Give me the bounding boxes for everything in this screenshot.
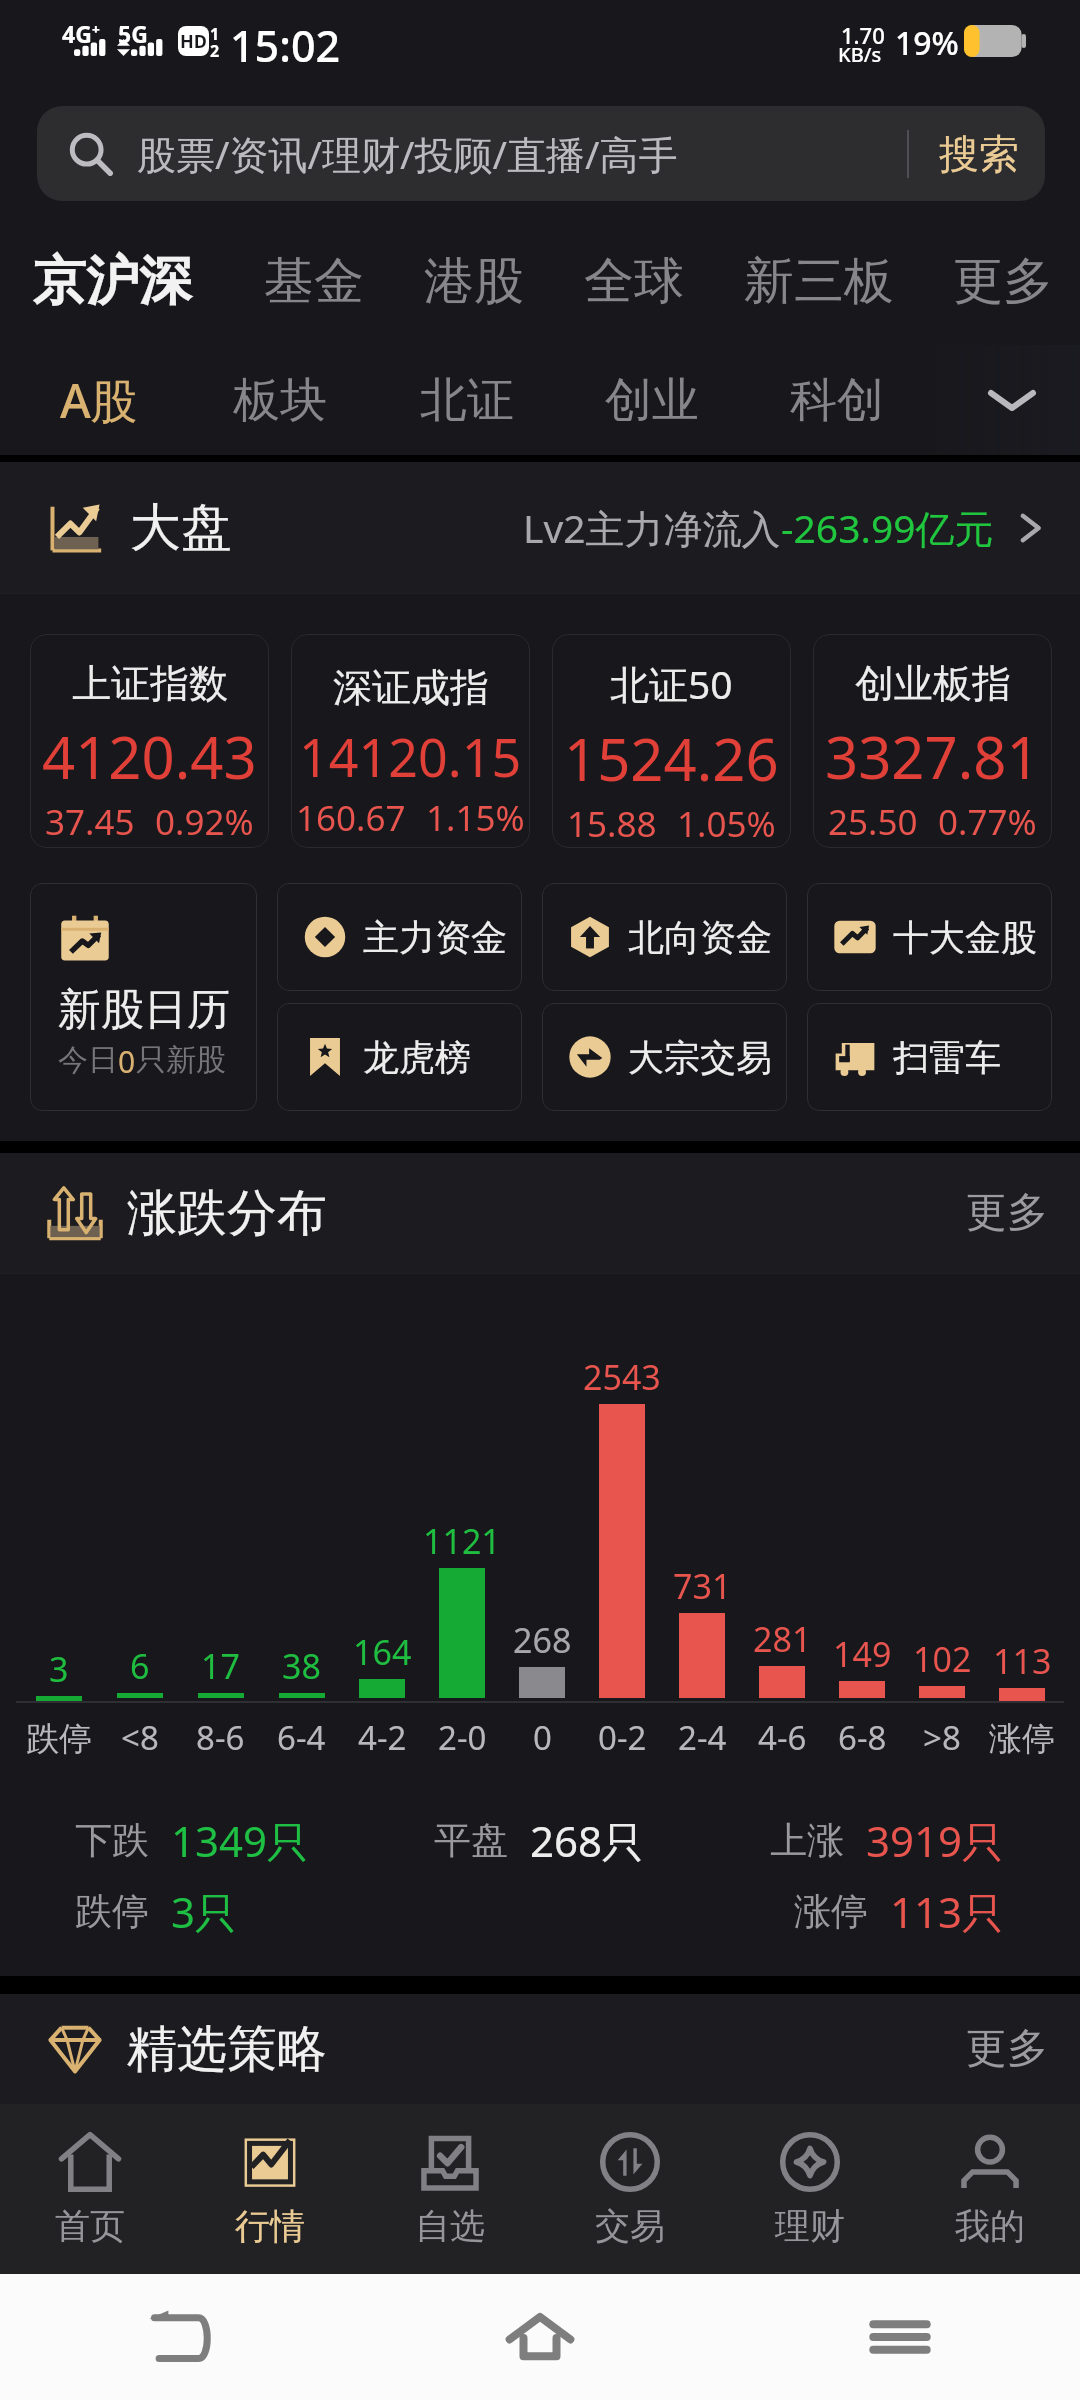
button[interactable]: 股票/资讯/理财/投顾/直播/高手 xyxy=(37,106,1045,201)
button[interactable]: 首页 xyxy=(0,2104,180,2274)
staticText: 北证 xyxy=(420,371,514,430)
staticText: 全球 xyxy=(584,250,684,313)
staticText: 自选 xyxy=(415,2204,485,2248)
button[interactable]: 全球 xyxy=(572,232,696,331)
staticText: 北向资金 xyxy=(628,915,772,960)
staticText: 新股日历 xyxy=(58,983,230,1037)
staticText: 164 xyxy=(353,1629,412,1675)
staticText: 上证指数 xyxy=(72,659,228,708)
staticText: 涨停 xyxy=(794,1888,868,1935)
staticText: 涨跌分布 xyxy=(127,1182,327,1245)
staticText: 0.92% xyxy=(155,798,254,846)
staticText: KB/s xyxy=(838,41,882,68)
staticText: 更多 xyxy=(966,1187,1048,1239)
staticText: 行情 xyxy=(235,2204,305,2248)
staticText: 1121 xyxy=(423,1518,501,1564)
button[interactable]: 自选 xyxy=(360,2104,540,2274)
button[interactable]: 新三板 xyxy=(732,232,906,331)
staticText: 龙虎榜 xyxy=(363,1035,471,1080)
button[interactable]: 创业 xyxy=(593,355,711,446)
staticText: 精选策略 xyxy=(127,2018,327,2081)
staticText: 下跌 xyxy=(75,1817,149,1864)
staticText: 1.15% xyxy=(426,794,525,842)
button[interactable]: 大宗交易 xyxy=(542,1003,787,1111)
button[interactable]: 港股 xyxy=(412,232,536,331)
button[interactable]: 我的 xyxy=(900,2104,1080,2274)
staticText: 4-6 xyxy=(758,1715,807,1760)
button[interactable]: 涨跌分布 xyxy=(0,1153,1080,1273)
staticText: 281 xyxy=(753,1616,812,1662)
staticText: 0-2 xyxy=(598,1715,647,1760)
button[interactable]: 北向资金 xyxy=(542,883,787,991)
button[interactable]: A股 xyxy=(48,352,150,448)
staticText: 6 xyxy=(130,1643,150,1689)
staticText: <8 xyxy=(121,1715,159,1760)
staticText: 首页 xyxy=(55,2204,125,2248)
button[interactable]: 交易 xyxy=(540,2104,720,2274)
staticText: 15.88 xyxy=(567,800,657,848)
staticText: 3327.81 xyxy=(825,717,1040,796)
staticText: 17 xyxy=(201,1643,240,1689)
staticText: >8 xyxy=(923,1715,961,1760)
button[interactable]: 大盘 xyxy=(0,462,1080,593)
button[interactable]: 十大金股 xyxy=(807,883,1052,991)
button[interactable]: 更多 xyxy=(941,232,1065,331)
staticText: 搜索 xyxy=(939,129,1019,179)
staticText: 主力资金 xyxy=(363,915,507,960)
staticText: 0.77% xyxy=(938,798,1037,846)
button[interactable]: 科创 xyxy=(778,355,896,446)
button[interactable]: Expand tabs xyxy=(975,363,1049,437)
staticText: 0 xyxy=(533,1715,552,1760)
staticText: -263.99亿元 xyxy=(781,501,994,554)
staticText: 我的 xyxy=(955,2204,1025,2248)
staticText: 113 xyxy=(993,1638,1052,1684)
staticText: 更多 xyxy=(966,2023,1048,2075)
button[interactable]: 深证成指 xyxy=(291,634,530,848)
staticText: 160.67 xyxy=(296,794,406,842)
staticText: 731 xyxy=(673,1563,732,1609)
button[interactable]: 精选策略 xyxy=(0,1994,1080,2104)
button[interactable]: Home xyxy=(360,2274,720,2400)
button[interactable]: 创业板指 xyxy=(813,634,1052,848)
button[interactable]: Recents xyxy=(720,2274,1080,2400)
button[interactable]: 龙虎榜 xyxy=(277,1003,522,1111)
staticText: 1.70 xyxy=(841,20,885,50)
button[interactable]: 理财 xyxy=(720,2104,900,2274)
staticText: 113只 xyxy=(890,1883,1005,1940)
staticText: 创业 xyxy=(605,371,699,430)
staticText: 1349只 xyxy=(171,1812,310,1869)
button[interactable]: 北证50 xyxy=(552,634,791,848)
button[interactable]: 新股日历 xyxy=(30,883,257,1111)
button[interactable]: 上证指数 xyxy=(30,634,269,848)
staticText: 4G⁺ xyxy=(62,18,101,49)
staticText: 38 xyxy=(282,1643,321,1689)
staticText: 19% xyxy=(895,21,959,65)
staticText: 3 xyxy=(49,1646,69,1692)
staticText: 深证成指 xyxy=(333,663,489,712)
staticText: 更多 xyxy=(953,250,1053,313)
button[interactable]: 行情 xyxy=(180,2104,360,2274)
staticText: 涨停 xyxy=(989,1718,1055,1760)
button[interactable]: 京沪深 xyxy=(21,230,204,333)
staticText: 6-4 xyxy=(277,1715,326,1760)
staticText: 268 xyxy=(513,1617,572,1663)
button[interactable]: 北证 xyxy=(408,355,526,446)
staticText: 上涨 xyxy=(770,1817,844,1864)
staticText: 8-6 xyxy=(196,1715,245,1760)
button[interactable]: 主力资金 xyxy=(277,883,522,991)
staticText: A股 xyxy=(60,368,138,432)
staticText: 6-8 xyxy=(838,1715,887,1760)
staticText: 25.50 xyxy=(828,798,918,846)
button[interactable]: 基金 xyxy=(252,232,376,331)
button[interactable]: 板块 xyxy=(221,355,339,446)
staticText: 2-0 xyxy=(438,1715,487,1760)
staticText: 平盘 xyxy=(434,1817,508,1864)
button[interactable]: 扫雷车 xyxy=(807,1003,1052,1111)
staticText: 102 xyxy=(913,1636,972,1682)
staticText: 京沪深 xyxy=(33,248,192,315)
button[interactable]: Back xyxy=(0,2274,360,2400)
staticText: 板块 xyxy=(233,371,327,430)
staticText: 14120.15 xyxy=(299,721,522,792)
staticText: 15:02 xyxy=(230,16,341,75)
staticText: 268只 xyxy=(530,1812,645,1869)
